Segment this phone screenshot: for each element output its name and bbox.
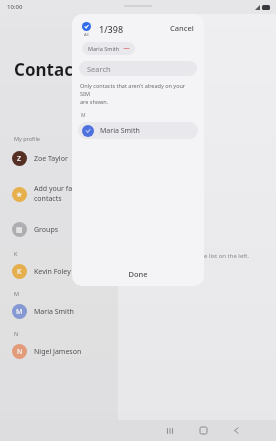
button[interactable]: K [0, 261, 118, 282]
staticText: Kevin Foley [34, 267, 71, 277]
staticText: Contacts [14, 58, 89, 81]
staticText: Cancel [170, 23, 194, 33]
staticText: N [14, 330, 19, 337]
button[interactable]: Cancel [170, 22, 194, 32]
staticText: e list on the left. [204, 252, 250, 260]
staticText: Only contacts that aren't already on you… [80, 82, 196, 106]
button[interactable]: Home [185, 420, 221, 441]
button[interactable]: ★ [0, 181, 118, 207]
staticText: All [84, 32, 89, 37]
staticText: 10:00 [7, 3, 23, 11]
button[interactable]: ▦ [0, 219, 118, 240]
staticText: K [17, 267, 22, 277]
staticText: M [16, 307, 23, 317]
button[interactable]: Recent apps [155, 420, 185, 441]
staticText: 1/398 [99, 23, 124, 35]
staticText: ★ [16, 191, 23, 199]
button[interactable]: Back [221, 420, 251, 441]
staticText: M [81, 112, 86, 119]
staticText: Zoe Taylor [34, 154, 68, 164]
staticText: N [17, 347, 23, 357]
staticText: Z [17, 154, 22, 164]
staticText: Done [128, 269, 148, 279]
staticText: Search [87, 64, 111, 74]
button[interactable]: Search [79, 61, 197, 76]
button[interactable]: N [0, 341, 118, 362]
button[interactable]: Z [0, 148, 118, 169]
button[interactable]: M [0, 301, 118, 322]
staticText: Groups [34, 225, 59, 235]
button[interactable]: Maria Smith [82, 42, 135, 55]
staticText: Nigel Jameson [34, 347, 82, 357]
staticText: Maria Smith [34, 307, 74, 317]
button[interactable]: Done [72, 262, 204, 286]
staticText: Maria Smith [100, 126, 140, 136]
button[interactable]: Maria Smith [78, 122, 198, 139]
staticText: My profile [14, 135, 40, 142]
staticText: K [14, 250, 18, 257]
button[interactable]: Select all [82, 22, 91, 37]
staticText: Maria Smith [88, 45, 120, 52]
staticText: M [14, 290, 19, 297]
staticText: Add your favourite contacts [34, 184, 96, 204]
staticText: ▦ [16, 226, 23, 234]
